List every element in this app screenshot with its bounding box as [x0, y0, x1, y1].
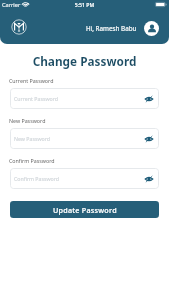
- staticText: Confirm Password: [14, 175, 60, 182]
- button[interactable]: Current Password: [10, 88, 159, 109]
- staticText: New Password: [9, 117, 46, 124]
- staticText: Current Password: [14, 95, 59, 102]
- staticText: Hi, Ramesh Babu: [86, 24, 137, 33]
- staticText: Confirm Password: [9, 157, 55, 164]
- staticText: Current Password: [9, 77, 54, 84]
- button[interactable]: Logo: [11, 19, 27, 35]
- button[interactable]: Show password: [145, 176, 153, 182]
- button[interactable]: New Password: [10, 128, 159, 149]
- staticText: Change Password: [0, 53, 169, 69]
- staticText: Update Password: [53, 205, 117, 215]
- button[interactable]: Show password: [145, 96, 153, 102]
- button[interactable]: Update Password: [10, 201, 159, 218]
- staticText: New Password: [14, 135, 51, 142]
- staticText: Carrier: [2, 1, 21, 9]
- button[interactable]: Confirm Password: [10, 168, 159, 189]
- staticText: 5:51 PM: [0, 1, 169, 8]
- button[interactable]: Show password: [145, 136, 153, 142]
- button[interactable]: Profile: [144, 21, 159, 36]
